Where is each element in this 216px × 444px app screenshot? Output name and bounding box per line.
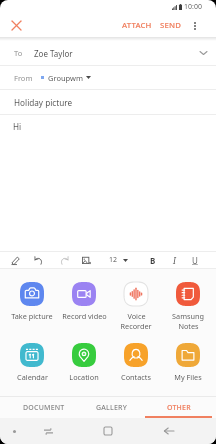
button[interactable]: I [167, 253, 181, 267]
staticText: Zoe Taylor [34, 48, 73, 59]
staticText: 12 [109, 255, 118, 265]
staticText: I [173, 255, 176, 266]
button[interactable]: To [0, 41, 216, 65]
staticText: Groupwm [48, 73, 83, 83]
button[interactable]: Close [3, 14, 29, 37]
button[interactable]: ATTACH [118, 14, 156, 37]
button[interactable]: Redo [56, 252, 72, 268]
staticText: Recorder [120, 321, 152, 331]
button[interactable]: U [188, 253, 202, 267]
button[interactable]: Take picture [6, 282, 58, 321]
staticText: Location [69, 372, 99, 382]
button[interactable]: Undo [30, 252, 46, 268]
button[interactable]: Calendar [6, 343, 58, 382]
staticText: SEND [160, 20, 181, 31]
button[interactable]: SEND [156, 14, 185, 37]
staticText: ATTACH [122, 20, 152, 31]
button[interactable]: Home [88, 418, 128, 444]
button[interactable]: OTHER [145, 397, 212, 418]
staticText: Hi [13, 121, 22, 132]
button[interactable]: Holiday picture [0, 90, 216, 114]
staticText: Samsung [172, 311, 204, 321]
button[interactable]: GALLERY [78, 397, 145, 418]
staticText: Calendar [17, 372, 48, 382]
button[interactable]: Back [149, 418, 189, 444]
staticText: B [150, 255, 156, 266]
button[interactable]: Voice [110, 282, 162, 331]
staticText: 10:00 [184, 2, 202, 12]
staticText: Contacts [121, 372, 151, 382]
button[interactable]: Recents [28, 418, 68, 444]
button[interactable]: DOCUMENT [10, 397, 78, 418]
button[interactable]: 12 [106, 252, 131, 268]
button[interactable]: Samsung [162, 282, 214, 331]
button[interactable]: Hide navigation bar [3, 418, 25, 444]
staticText: Record video [62, 311, 107, 321]
button[interactable]: From [0, 66, 216, 89]
staticText: DOCUMENT [23, 403, 65, 413]
button[interactable]: Edit [7, 252, 23, 268]
staticText: U [192, 255, 198, 266]
staticText: Holiday picture [14, 97, 73, 108]
staticText: OTHER [167, 403, 191, 413]
button[interactable]: My Files [162, 343, 214, 382]
staticText: My Files [174, 372, 202, 382]
staticText: To [14, 48, 23, 58]
button[interactable]: More options [185, 14, 205, 37]
staticText: From [14, 73, 33, 83]
button[interactable]: Record video [58, 282, 110, 321]
button[interactable]: B [146, 253, 160, 267]
button[interactable]: Insert image [78, 252, 94, 268]
button[interactable]: Location [58, 343, 110, 382]
staticText: Take picture [11, 311, 53, 321]
button[interactable]: Contacts [110, 343, 162, 382]
staticText: Notes [178, 321, 199, 331]
staticText: GALLERY [96, 403, 127, 413]
staticText: Voice [127, 311, 146, 321]
